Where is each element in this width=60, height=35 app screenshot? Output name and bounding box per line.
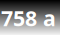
staticText: 758 a: [1, 4, 56, 32]
